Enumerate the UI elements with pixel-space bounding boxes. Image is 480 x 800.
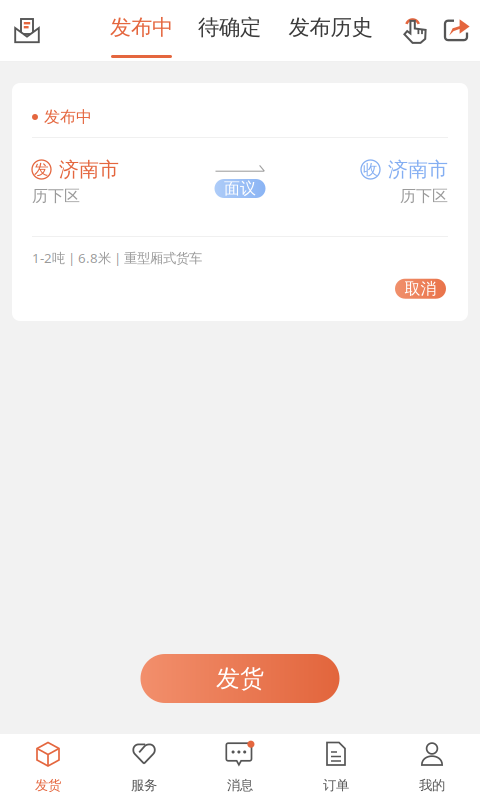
staticText: 发布中 <box>44 107 92 127</box>
staticText: 收 <box>363 160 378 178</box>
button[interactable]: 我的 <box>384 734 480 800</box>
staticText: 面议 <box>224 179 256 198</box>
button[interactable]: 订单 <box>288 734 384 800</box>
staticText: 服务 <box>131 777 157 793</box>
button[interactable]: 取消 <box>395 279 446 299</box>
staticText: 发布历史 <box>288 14 372 41</box>
button[interactable]: Inbox <box>0 0 54 61</box>
button[interactable]: 发布中 <box>12 83 468 321</box>
staticText: 1-2吨 | 6.8米 | 重型厢式货车 <box>32 249 202 267</box>
staticText: 发 <box>34 160 49 178</box>
staticText: 发货 <box>35 777 61 793</box>
button[interactable]: Tap mode <box>396 0 434 61</box>
button[interactable]: 服务 <box>96 734 192 800</box>
button[interactable]: 发布历史 <box>290 0 371 61</box>
button[interactable]: Share <box>434 0 480 61</box>
staticText: 济南市 <box>388 157 448 182</box>
button[interactable]: 发货 <box>140 654 339 703</box>
staticText: 消息 <box>227 777 253 793</box>
staticText: 历下区 <box>400 186 448 206</box>
button[interactable]: 消息 <box>192 734 288 800</box>
staticText: 济南市 <box>59 157 119 182</box>
staticText: 发货 <box>216 664 264 693</box>
staticText: 待确定 <box>198 14 261 41</box>
staticText: 取消 <box>404 279 436 299</box>
staticText: 订单 <box>323 777 349 793</box>
staticText: 我的 <box>419 777 445 793</box>
button[interactable]: 待确定 <box>199 0 260 61</box>
button[interactable]: 发布中 <box>111 0 172 61</box>
button[interactable]: 发货 <box>0 734 96 800</box>
staticText: 历下区 <box>32 186 80 206</box>
staticText: 发布中 <box>110 14 173 41</box>
